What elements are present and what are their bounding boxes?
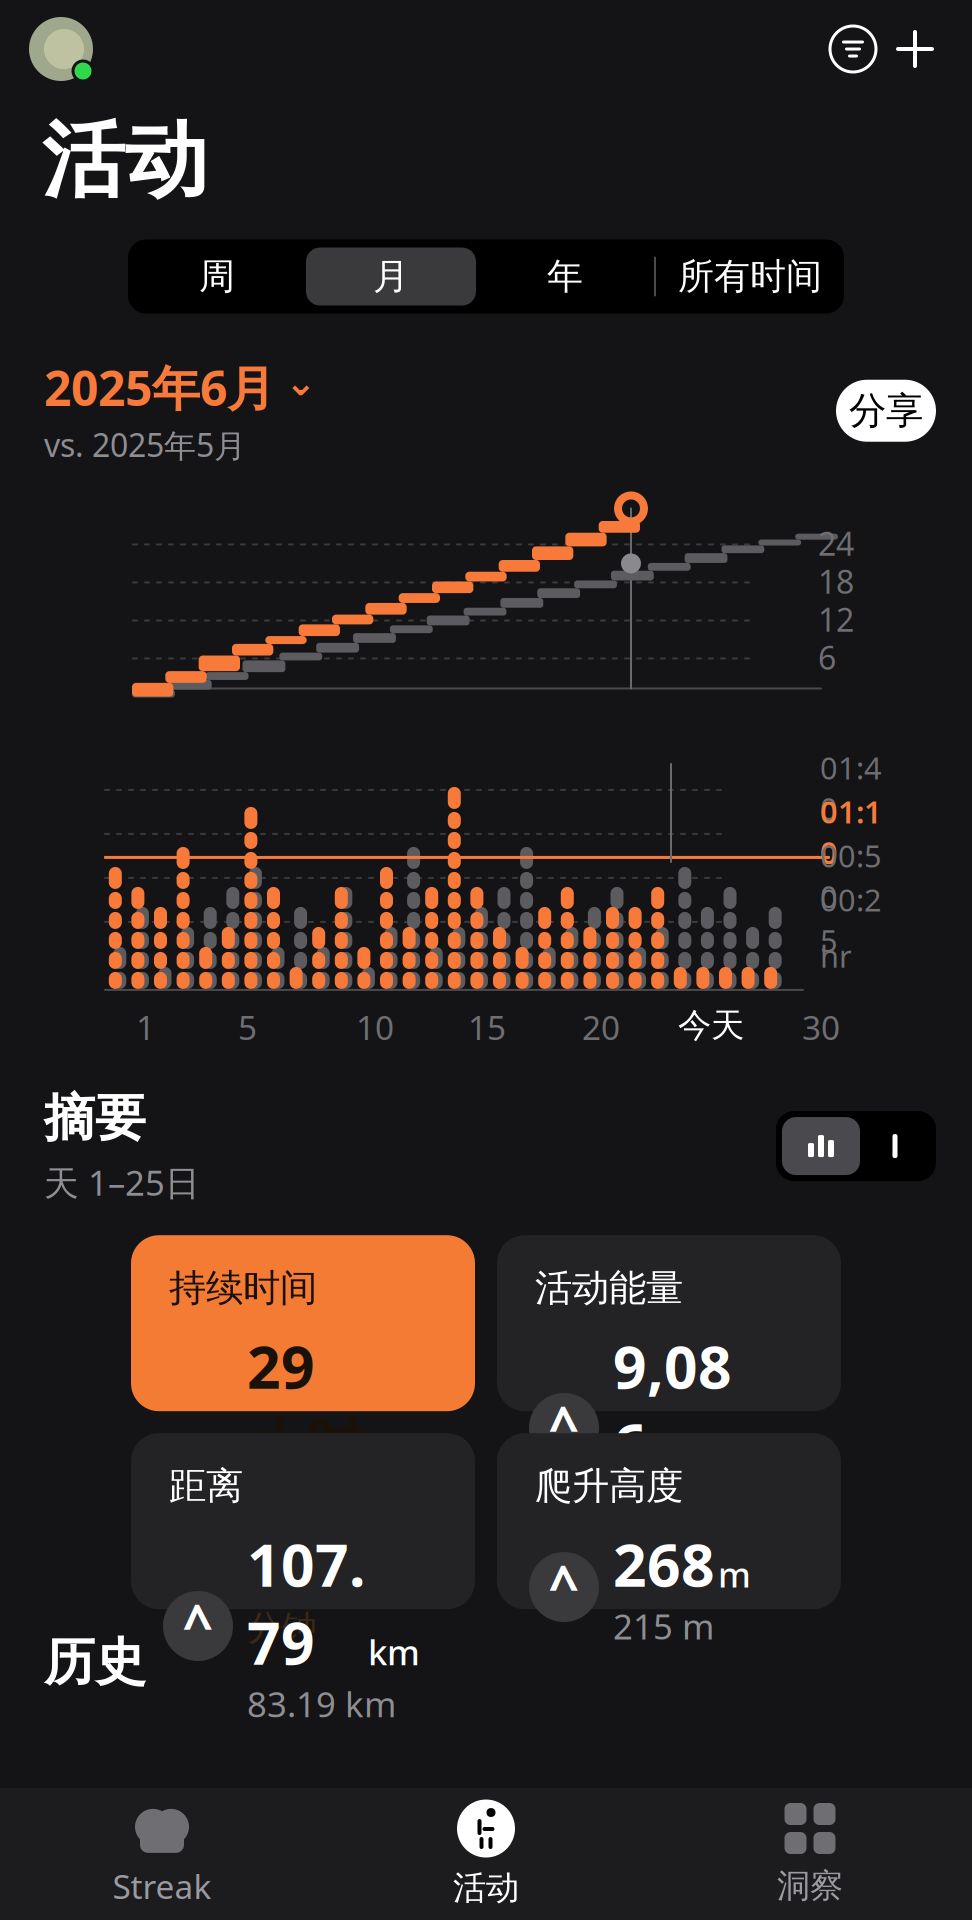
button[interactable]: 月 xyxy=(306,247,476,305)
staticText: ^ xyxy=(182,1450,213,1521)
staticText: 所有时间 xyxy=(678,254,822,299)
staticText: 月 xyxy=(373,254,409,299)
staticText: 268 xyxy=(613,1525,715,1603)
staticText: 分享 xyxy=(849,388,923,434)
staticText: 83.19 km xyxy=(247,1681,396,1727)
button[interactable]: 洞察 xyxy=(648,1794,972,1914)
staticText: 5 xyxy=(238,1005,257,1049)
staticText: 00:25 xyxy=(820,879,882,961)
staticText: 18 xyxy=(818,560,854,603)
staticText: 周 xyxy=(199,254,235,299)
staticText: 00:50 xyxy=(820,835,882,917)
button[interactable]: Streak xyxy=(0,1794,324,1914)
button[interactable]: 距离 xyxy=(131,1433,475,1609)
staticText: 1 xyxy=(136,1005,155,1049)
staticText: 10 xyxy=(356,1005,394,1049)
button[interactable]: 所有时间 xyxy=(656,243,844,309)
staticText: 今天 xyxy=(678,1005,744,1046)
staticText: 爬升高度 xyxy=(535,1463,683,1509)
staticText: 215 m xyxy=(613,1603,714,1649)
staticText: 6,334 kcal xyxy=(613,1483,775,1529)
staticText: 天 1–25日 xyxy=(44,1159,200,1205)
staticText: 20 xyxy=(582,1005,620,1049)
button[interactable]: Filter xyxy=(822,18,884,80)
button[interactable]: Add xyxy=(884,18,946,80)
staticText: 历史 xyxy=(44,1631,146,1693)
staticText: 6 xyxy=(818,636,836,679)
staticText: 距离 xyxy=(169,1463,243,1509)
staticText: ^ xyxy=(548,1390,579,1460)
staticText: 24 xyxy=(818,522,854,565)
button[interactable]: 活动 xyxy=(324,1794,648,1914)
staticText: Streak xyxy=(112,1864,211,1908)
button[interactable]: 2025年6月 xyxy=(44,355,316,466)
staticText: 活动 xyxy=(42,110,208,211)
staticText: 12 xyxy=(818,598,854,641)
staticText: 21 小时 12 分钟 xyxy=(247,1561,415,1649)
button[interactable]: Line view xyxy=(860,1117,930,1175)
staticText: vs. 2025年5月 xyxy=(44,423,246,466)
staticText: hr xyxy=(820,936,852,976)
staticText: 持续时间 xyxy=(169,1265,317,1311)
staticText: 30 xyxy=(802,1005,840,1049)
staticText: 01:40 xyxy=(820,747,882,829)
staticText: 01:10 xyxy=(820,791,882,873)
button[interactable]: 爬升高度 xyxy=(497,1433,841,1609)
staticText: ^ xyxy=(182,1588,213,1658)
staticText: 29 小时 16 xyxy=(247,1327,365,1561)
staticText: 活动能量 xyxy=(535,1265,683,1311)
staticText: km xyxy=(368,1629,420,1675)
staticText: 2025年6月 xyxy=(44,355,275,419)
staticText: 年 xyxy=(547,254,583,299)
staticText: 活动 xyxy=(453,1867,519,1908)
staticText: 9,086 xyxy=(613,1327,732,1483)
staticText: kcal xyxy=(735,1431,800,1477)
staticText: 15 xyxy=(468,1005,506,1049)
staticText: ⌄ xyxy=(285,361,316,404)
button[interactable]: Profile xyxy=(28,16,94,82)
button[interactable]: 周 xyxy=(128,243,306,309)
button[interactable]: Bar view xyxy=(782,1117,860,1175)
staticText: ^ xyxy=(548,1549,579,1619)
staticText: m xyxy=(718,1551,751,1597)
staticText: 摘要 xyxy=(44,1087,146,1149)
button[interactable]: 年 xyxy=(476,243,654,309)
button[interactable]: 持续时间 xyxy=(131,1235,475,1411)
button[interactable]: 活动能量 xyxy=(497,1235,841,1411)
staticText: 107.79 xyxy=(247,1525,365,1681)
staticText: 洞察 xyxy=(777,1865,843,1906)
button[interactable]: 分享 xyxy=(836,380,936,442)
